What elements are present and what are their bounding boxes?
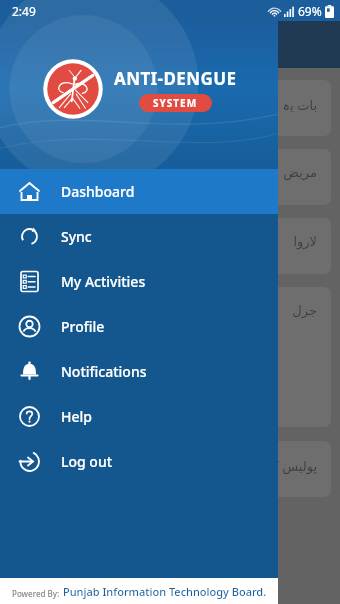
staticText: Notifications: [61, 362, 147, 381]
staticText: Dashboard: [61, 182, 135, 201]
staticText: My Activities: [61, 272, 146, 291]
button[interactable]: مریض: [181, 149, 331, 205]
staticText: 69%: [298, 3, 322, 19]
staticText: Log out: [61, 452, 113, 471]
staticText: لاروا: [293, 234, 317, 249]
button[interactable]: Sync: [0, 214, 278, 259]
button[interactable]: لاروا: [181, 218, 331, 274]
button[interactable]: Dashboard: [0, 169, 278, 214]
button[interactable]: Profile: [0, 304, 278, 349]
staticText: Sync: [61, 227, 92, 246]
button[interactable]: Log out: [0, 439, 278, 484]
button[interactable]: جزل: [181, 287, 331, 427]
button[interactable]: بات یہ: [181, 80, 331, 136]
staticText: بات یہ: [282, 96, 317, 114]
staticText: Help: [61, 407, 92, 426]
staticText: مریض: [283, 165, 317, 180]
button[interactable]: Help: [0, 394, 278, 439]
staticText: SYSTEM: [153, 96, 198, 110]
staticText: پولیس کے: [265, 457, 317, 475]
button[interactable]: My Activities: [0, 259, 278, 304]
button[interactable]: Notifications: [0, 349, 278, 394]
staticText: ANTI-DENGUE: [114, 67, 237, 90]
staticText: Powered By:: [12, 588, 60, 599]
staticText: Punjab Information Technology Board.: [63, 584, 267, 599]
staticText: جزل: [292, 303, 317, 318]
button[interactable]: پولیس کے: [181, 441, 331, 497]
staticText: Profile: [61, 317, 105, 336]
staticText: 2:49: [12, 3, 36, 19]
